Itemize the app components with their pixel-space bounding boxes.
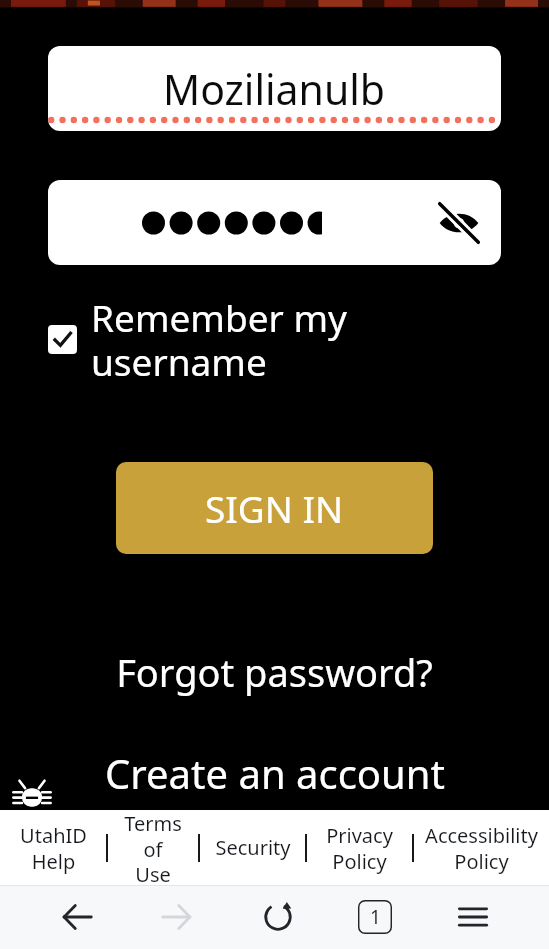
staticText: Privacy Policy [326, 822, 393, 874]
button[interactable]: Mozilianulb [48, 46, 501, 131]
staticText: Remember my username [91, 292, 519, 387]
staticText: Forgot password? [116, 646, 433, 698]
button[interactable]: Back [53, 893, 101, 941]
button[interactable]: Report issue [10, 775, 54, 819]
button[interactable]: UtahID Help [0, 810, 106, 885]
button[interactable]: Privacy Policy [307, 810, 412, 885]
button[interactable]: Forgot password? [116, 646, 433, 698]
button[interactable]: Tabs [354, 896, 396, 938]
staticText: Accessibility Policy [425, 822, 538, 874]
button[interactable]: Menu [449, 893, 497, 941]
button[interactable]: Accessibility Policy [414, 810, 549, 885]
staticText: Mozilianulb [163, 61, 386, 117]
staticText: 1 [370, 904, 381, 930]
button[interactable]: Remember my username [48, 292, 519, 387]
button[interactable]: SIGN IN [116, 462, 433, 554]
staticText: Create an account [105, 746, 445, 800]
button[interactable]: Create an account [105, 746, 445, 800]
button[interactable]: Forward [153, 893, 201, 941]
button[interactable]: Security [200, 810, 305, 885]
staticText: UtahID Help [20, 822, 87, 874]
staticText: SIGN IN [205, 483, 344, 533]
button[interactable]: Show password [48, 180, 501, 265]
button[interactable]: Reload [254, 893, 302, 941]
staticText: Security [215, 834, 291, 861]
staticText: Terms of Use [124, 810, 182, 885]
button[interactable]: Terms of Use [108, 810, 198, 885]
button[interactable]: Show password [431, 195, 487, 251]
